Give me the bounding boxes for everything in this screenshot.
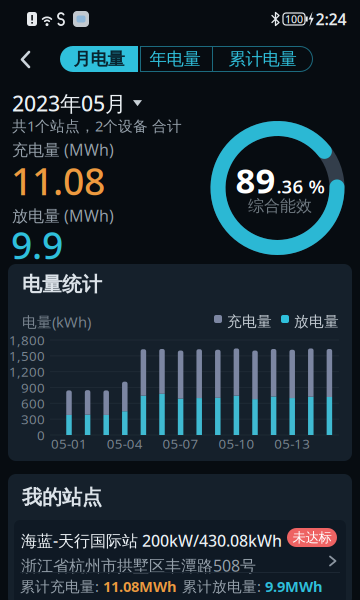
staticText: 累计电量 xyxy=(228,48,296,70)
staticText: 0 xyxy=(37,426,45,444)
staticText: 综合能效 xyxy=(248,196,312,216)
staticText: 充电量 (MWh) xyxy=(12,139,114,160)
staticText: 9.9MWh xyxy=(265,576,323,596)
staticText: 05-07 xyxy=(163,435,199,452)
staticText: 05-10 xyxy=(218,435,254,452)
staticText: 共1个站点，2个设备 合计 xyxy=(12,116,182,135)
button[interactable]: 累计电量 xyxy=(212,46,313,72)
staticText: 11.08MWh xyxy=(103,576,177,596)
staticText: 05-04 xyxy=(107,435,143,452)
button[interactable]: 月电量 xyxy=(60,46,138,72)
staticText: 600 xyxy=(21,394,45,412)
staticText: 海蓝-天行国际站 200kW/430.08kWh xyxy=(21,530,282,551)
button[interactable]: 2023年05月 xyxy=(12,89,142,117)
staticText: 2023年05月 xyxy=(12,89,126,117)
button[interactable]: 海蓝-天行国际站 200kW/430.08kWh xyxy=(14,520,346,600)
staticText: 电量(kWh) xyxy=(22,312,91,331)
staticText: 我的站点 xyxy=(22,485,102,510)
staticText: 1,800 xyxy=(9,331,45,349)
staticText: 浙江省杭州市拱墅区丰潭路508号 xyxy=(21,555,256,576)
staticText: 充电量 xyxy=(227,312,272,330)
staticText: 900 xyxy=(21,379,45,396)
staticText: .36 % xyxy=(276,174,324,199)
staticText: 未达标 xyxy=(292,529,331,546)
button[interactable]: 年电量 xyxy=(138,46,212,72)
staticText: 电量统计 xyxy=(22,272,102,297)
staticText: 月电量 xyxy=(73,48,124,70)
staticText: 1,200 xyxy=(9,363,45,380)
staticText: 年电量 xyxy=(149,48,200,70)
staticText: 放电量 (MWh) xyxy=(12,205,114,226)
staticText: 9.9 xyxy=(11,220,63,270)
button[interactable]: Back xyxy=(20,49,32,70)
staticText: 05-01 xyxy=(51,435,87,452)
staticText: 05-13 xyxy=(274,435,310,452)
staticText: 100 xyxy=(285,12,303,26)
staticText: 累计充电量: xyxy=(20,576,99,596)
staticText: 2:24 xyxy=(315,8,346,30)
staticText: 累计放电量: xyxy=(182,576,261,596)
staticText: 放电量 xyxy=(294,312,339,330)
staticText: 89 xyxy=(235,157,275,203)
staticText: 11.08 xyxy=(11,156,105,206)
staticText: 1,500 xyxy=(9,347,45,365)
staticText: 300 xyxy=(21,410,45,428)
